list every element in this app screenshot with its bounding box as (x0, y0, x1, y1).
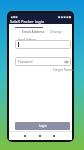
staticText: Forgot Password? (53, 68, 74, 72)
button[interactable]: Password (15, 57, 71, 66)
staticText: Login (39, 124, 47, 128)
staticText: Email Address (22, 29, 45, 34)
staticText: Change (50, 29, 63, 34)
staticText: Email Address (18, 38, 37, 42)
staticText: Password (18, 60, 33, 64)
staticText: SaleX Packer login (10, 19, 45, 24)
button[interactable]: Forgot Password? (53, 68, 74, 72)
button[interactable]: Email Address (15, 40, 71, 49)
button[interactable]: Show password (64, 60, 69, 64)
button[interactable]: Login (15, 122, 70, 130)
